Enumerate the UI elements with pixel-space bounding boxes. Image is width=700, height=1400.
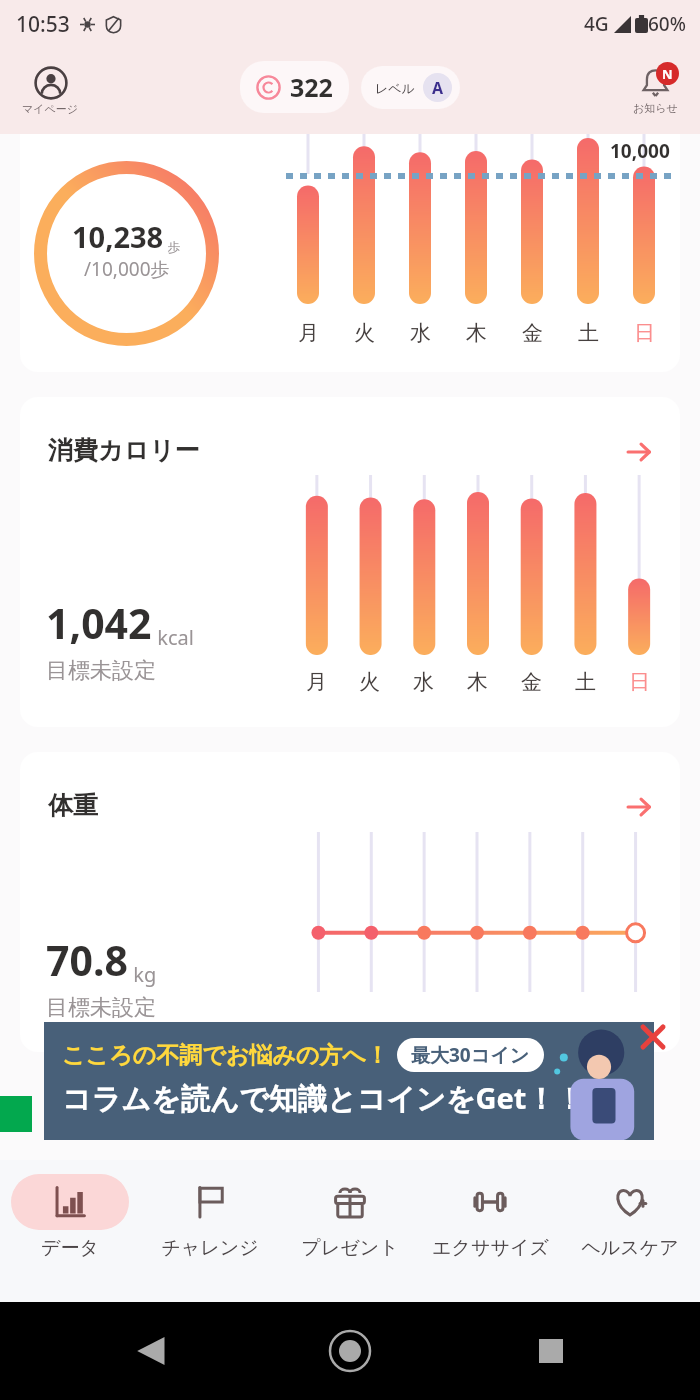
staticText: お知らせ (633, 101, 678, 115)
staticText: 金 (522, 320, 543, 346)
staticText: 日 (634, 320, 655, 346)
staticText: A (432, 77, 444, 99)
button[interactable]: お知らせ (629, 63, 682, 119)
button[interactable]: こころの不調でお悩みの方へ！ (44, 1022, 654, 1140)
button[interactable]: 322 (240, 61, 349, 113)
staticText: 4G (584, 11, 609, 37)
other: 詳細を見る (626, 439, 652, 465)
button[interactable]: 消費カロリー (20, 397, 680, 727)
staticText: 月 (298, 320, 319, 346)
staticText: 322 (290, 70, 333, 104)
staticText: 水 (410, 320, 431, 346)
staticText: 体重 (48, 790, 98, 821)
staticText: ヘルスケア (581, 1236, 679, 1260)
staticText: 金 (521, 669, 542, 695)
staticText: 10:53 (16, 10, 70, 39)
staticText: kg (128, 961, 157, 988)
staticText: マイページ (22, 102, 79, 116)
button[interactable]: 体重 (20, 752, 680, 1052)
staticText: 木 (467, 669, 488, 695)
staticText: 60% (648, 11, 686, 37)
button[interactable]: ヘルスケア (560, 1160, 700, 1302)
staticText: 月 (306, 669, 327, 695)
staticText: 消費カロリー (48, 435, 200, 466)
staticText: 70.8 (46, 932, 128, 988)
staticText: 土 (575, 669, 596, 695)
staticText: エクササイズ (432, 1236, 549, 1260)
button[interactable]: 閉じる (640, 1024, 666, 1050)
staticText: 目標未設定 (46, 994, 156, 1022)
button[interactable]: プレゼント (280, 1160, 420, 1302)
staticText: 木 (466, 320, 487, 346)
staticText: こころの不調でお悩みの方へ！ (62, 1041, 389, 1070)
staticText: 歩 (164, 238, 181, 256)
staticText: チャレンジ (161, 1236, 259, 1260)
other: 詳細を見る (626, 794, 652, 820)
button[interactable]: 10,238 (20, 134, 680, 372)
staticText: レベル (375, 80, 415, 96)
staticText: kcal (152, 624, 194, 651)
button[interactable]: データ (0, 1160, 140, 1302)
staticText: 日 (629, 669, 650, 695)
staticText: 1,042 (46, 595, 152, 651)
button[interactable]: マイページ (18, 62, 83, 120)
staticText: 目標未設定 (46, 657, 156, 685)
staticText: 10,000 (610, 138, 670, 164)
staticText: 最大30コイン (411, 1042, 530, 1068)
staticText: /10,000歩 (84, 256, 170, 282)
staticText: 水 (413, 669, 434, 695)
staticText: 火 (359, 669, 380, 695)
staticText: データ (41, 1236, 99, 1260)
button[interactable]: エクササイズ (420, 1160, 560, 1302)
button[interactable]: レベル (361, 66, 460, 109)
staticText: コラムを読んで知識とコインをGet！！ (62, 1078, 585, 1118)
staticText: 土 (578, 320, 599, 346)
staticText: プレゼント (301, 1236, 399, 1260)
staticText: 10,238 (72, 217, 164, 256)
staticText: N (662, 65, 673, 83)
button[interactable]: チャレンジ (140, 1160, 280, 1302)
staticText: 火 (354, 320, 375, 346)
